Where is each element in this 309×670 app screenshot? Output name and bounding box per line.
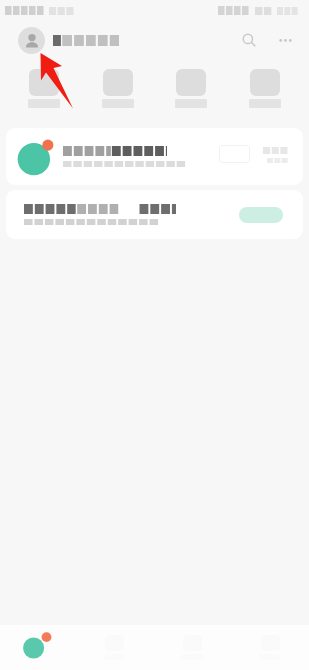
button[interactable]: Quick action — [161, 69, 221, 108]
button[interactable]: More options — [272, 27, 298, 53]
button[interactable]: Search — [236, 27, 262, 53]
button[interactable]: Profile — [18, 27, 45, 54]
button[interactable] — [6, 128, 303, 185]
button[interactable]: Action — [6, 190, 303, 239]
button[interactable]: Action — [239, 207, 283, 223]
button[interactable]: Quick action — [14, 69, 74, 108]
button[interactable]: Quick action — [88, 69, 148, 108]
button[interactable]: Home — [0, 625, 74, 670]
button[interactable]: Quick action — [235, 69, 295, 108]
